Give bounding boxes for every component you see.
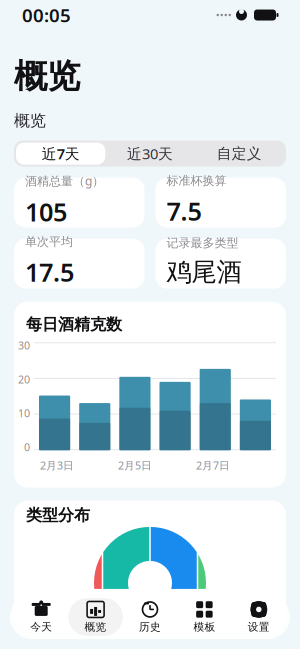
staticText: 类型分布 [26, 505, 90, 525]
staticText: 记录最多类型 [166, 236, 238, 250]
staticText: 17.5 [25, 255, 74, 289]
staticText: 模板 [193, 620, 215, 633]
button[interactable]: 历史 [123, 598, 177, 636]
button[interactable]: 模板 [177, 598, 232, 636]
staticText: 2月7日 [196, 458, 230, 472]
staticText: 近30天 [127, 144, 173, 163]
button[interactable]: 近30天 [105, 143, 195, 165]
staticText: 历史 [139, 620, 161, 633]
staticText: 酒精总量（g） [25, 173, 104, 189]
staticText: 105 [25, 195, 67, 228]
button[interactable]: 近7天 [16, 143, 105, 165]
staticText: 标准杯换算 [166, 173, 226, 188]
staticText: 单次平均 [25, 234, 73, 249]
button[interactable]: 概览 [68, 598, 123, 636]
staticText: 2月3日 [40, 458, 74, 472]
staticText: 鸡尾酒 [166, 256, 241, 287]
staticText: 近7天 [42, 144, 80, 163]
staticText: 概览 [85, 620, 107, 633]
staticText: 00:05 [22, 3, 71, 27]
staticText: 0 [24, 440, 30, 454]
staticText: 自定义 [217, 145, 262, 163]
staticText: 设置 [248, 620, 270, 633]
staticText: 每日酒精克数 [26, 315, 122, 334]
staticText: 20 [18, 372, 30, 386]
button[interactable]: 今天 [14, 598, 68, 636]
staticText: 概览 [14, 111, 46, 131]
button[interactable]: 设置 [232, 598, 286, 636]
staticText: 30 [18, 338, 30, 352]
staticText: 2月5日 [118, 458, 152, 472]
staticText: 10 [18, 406, 30, 420]
staticText: 今天 [30, 620, 52, 633]
button[interactable]: 自定义 [195, 143, 284, 165]
staticText: 概览 [14, 56, 80, 97]
staticText: 7.5 [166, 194, 201, 228]
